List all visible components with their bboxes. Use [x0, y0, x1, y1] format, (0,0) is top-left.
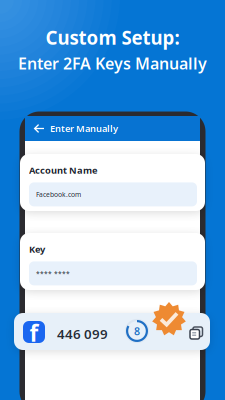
staticText: f [29, 318, 38, 348]
staticText: Account Name [29, 164, 98, 176]
staticText: Key [29, 243, 45, 255]
staticText: Custom Setup: [45, 25, 179, 50]
staticText: **** **** [36, 269, 70, 278]
staticText: Enter Manually [50, 122, 118, 135]
staticText: 8 [134, 324, 140, 338]
staticText: 446 099 [57, 325, 108, 343]
staticText: Facebook.com [36, 190, 81, 199]
staticText: Enter 2FA Keys Manually [18, 53, 207, 74]
